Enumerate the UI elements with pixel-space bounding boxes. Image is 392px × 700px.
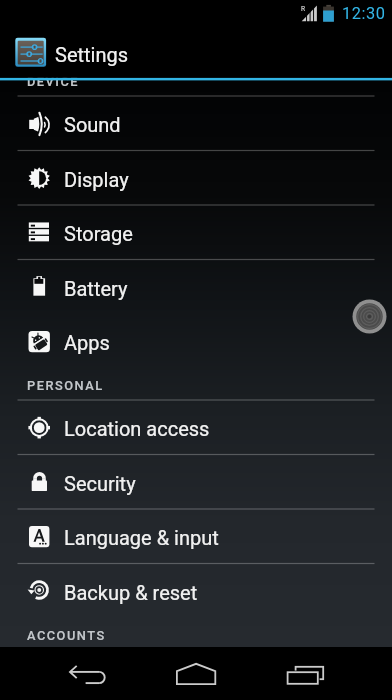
staticText: R (301, 5, 306, 13)
staticText: Display (64, 168, 129, 191)
staticText: 12:30 (342, 4, 386, 23)
staticText: DEVICE (27, 74, 80, 89)
button[interactable] (0, 96, 392, 151)
button[interactable]: Recent apps (275, 650, 337, 697)
staticText: Location access (64, 417, 210, 440)
staticText: Apps (64, 331, 110, 354)
staticText: Sound (64, 113, 121, 136)
staticText: Storage (64, 222, 133, 245)
button[interactable] (0, 455, 392, 510)
button[interactable] (0, 564, 392, 619)
staticText: Language & input (64, 526, 219, 549)
staticText: ACCOUNTS (27, 628, 106, 643)
button[interactable] (0, 26, 392, 78)
staticText: Security (64, 472, 136, 495)
button[interactable]: Back (58, 650, 120, 697)
button[interactable] (0, 151, 392, 206)
staticText: Backup & reset (64, 581, 198, 604)
staticText: PERSONAL (27, 378, 104, 393)
button[interactable] (0, 205, 392, 260)
staticText: Battery (64, 277, 128, 300)
button[interactable]: Home (165, 650, 227, 697)
button[interactable] (0, 400, 392, 455)
button[interactable] (0, 260, 392, 315)
staticText: Settings (55, 43, 129, 66)
button[interactable] (0, 509, 392, 564)
button[interactable] (0, 314, 392, 369)
